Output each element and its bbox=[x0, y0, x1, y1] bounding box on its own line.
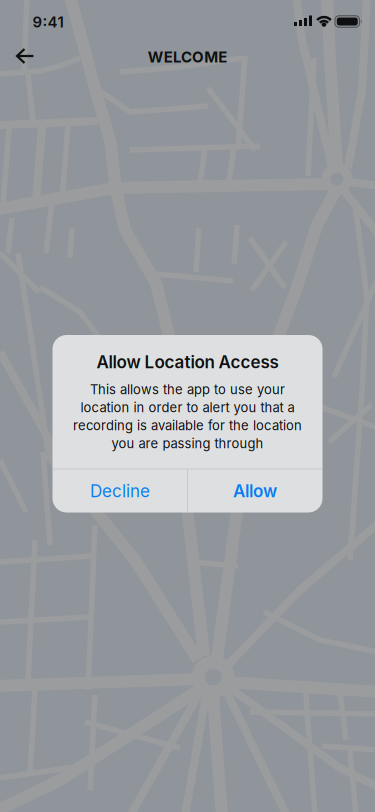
staticText: you are passing through bbox=[111, 436, 263, 451]
button[interactable]: Decline bbox=[53, 469, 187, 513]
staticText: Allow Location Access bbox=[96, 352, 278, 372]
staticText: This allows the app to use your bbox=[90, 382, 285, 397]
button[interactable]: Allow bbox=[188, 469, 322, 513]
staticText: WELCOME bbox=[148, 48, 227, 66]
staticText: recording is available for the location bbox=[73, 418, 302, 433]
staticText: Allow bbox=[233, 481, 277, 501]
staticText: 9:41 bbox=[32, 13, 63, 31]
staticText: location in order to alert you that a bbox=[80, 400, 294, 415]
button[interactable]: Back bbox=[3, 39, 47, 73]
staticText: Decline bbox=[90, 481, 150, 501]
